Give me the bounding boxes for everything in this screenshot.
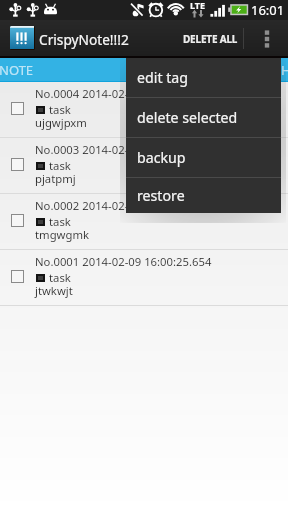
staticText: DELETE ALL: [183, 32, 238, 46]
staticText: restore: [137, 186, 185, 205]
button[interactable]: edit tag: [126, 58, 281, 97]
staticText: backup: [137, 148, 186, 167]
button[interactable]: backup: [126, 138, 281, 177]
button[interactable]: Select note: [11, 214, 24, 227]
staticText: ujgwjpxm: [35, 115, 87, 130]
button[interactable]: Select note: [11, 270, 24, 283]
button[interactable]: restore: [126, 178, 281, 213]
button[interactable]: Select note: [11, 102, 24, 115]
staticText: task: [49, 158, 71, 173]
staticText: task: [49, 270, 71, 285]
staticText: delete selected: [137, 108, 238, 127]
staticText: NOTE: [0, 61, 34, 79]
staticText: jtwkwjt: [35, 283, 73, 298]
staticText: No.0002 2014-02-09 16:00:27.789: [35, 198, 212, 213]
button[interactable]: More options: [246, 20, 288, 56]
staticText: 16:01: [251, 1, 285, 19]
button[interactable]: delete selected: [126, 98, 281, 137]
button[interactable]: CrispyNote!!!2: [0, 20, 160, 56]
staticText: No.0004 2014-02-09 16:00:31.123: [35, 86, 212, 101]
staticText: No.0001 2014-02-09 16:00:25.654: [35, 254, 212, 269]
staticText: pjatpmj: [35, 171, 76, 186]
button[interactable]: H: [281, 58, 288, 82]
staticText: edit tag: [137, 68, 189, 87]
staticText: No.0003 2014-02-09 16:00:29.456: [35, 142, 212, 157]
button[interactable]: Select note: [0, 82, 288, 137]
staticText: LTE: [190, 0, 206, 11]
button[interactable]: Select note: [0, 250, 288, 305]
button[interactable]: Select note: [0, 194, 288, 249]
staticText: tmgwgmk: [35, 227, 90, 242]
button[interactable]: Select note: [0, 138, 288, 193]
staticText: task: [49, 214, 71, 229]
button[interactable]: Select note: [11, 158, 24, 171]
staticText: CrispyNote!!!2: [39, 30, 129, 49]
button[interactable]: DELETE ALL: [175, 20, 246, 56]
button[interactable]: NOTE: [0, 58, 281, 82]
staticText: task: [49, 102, 71, 117]
staticText: H: [281, 61, 288, 79]
